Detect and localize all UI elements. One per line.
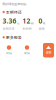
staticText: 客服: [24, 51, 30, 55]
button[interactable]: 客服: [18, 45, 36, 55]
staticText: 剩余期: [22, 26, 31, 31]
staticText: 明细: [6, 51, 12, 55]
staticText: 12: [22, 16, 30, 25]
staticText: 逾期: [38, 26, 44, 31]
staticText: 更多服务: [6, 34, 22, 40]
staticText: 还款: [45, 50, 51, 55]
staticText: 本期待还: [6, 9, 22, 15]
staticText: 我的钱包账单明细: [2, 2, 26, 6]
staticText: 本期应还: [2, 26, 14, 31]
button[interactable]: 明细: [0, 45, 18, 55]
button[interactable]: 还款: [43, 43, 54, 57]
staticText: 0: [38, 16, 42, 25]
staticText: 笔: [43, 21, 46, 25]
staticText: 3.36: [2, 16, 16, 25]
staticText: 元: [17, 21, 20, 25]
staticText: 期: [31, 21, 34, 25]
